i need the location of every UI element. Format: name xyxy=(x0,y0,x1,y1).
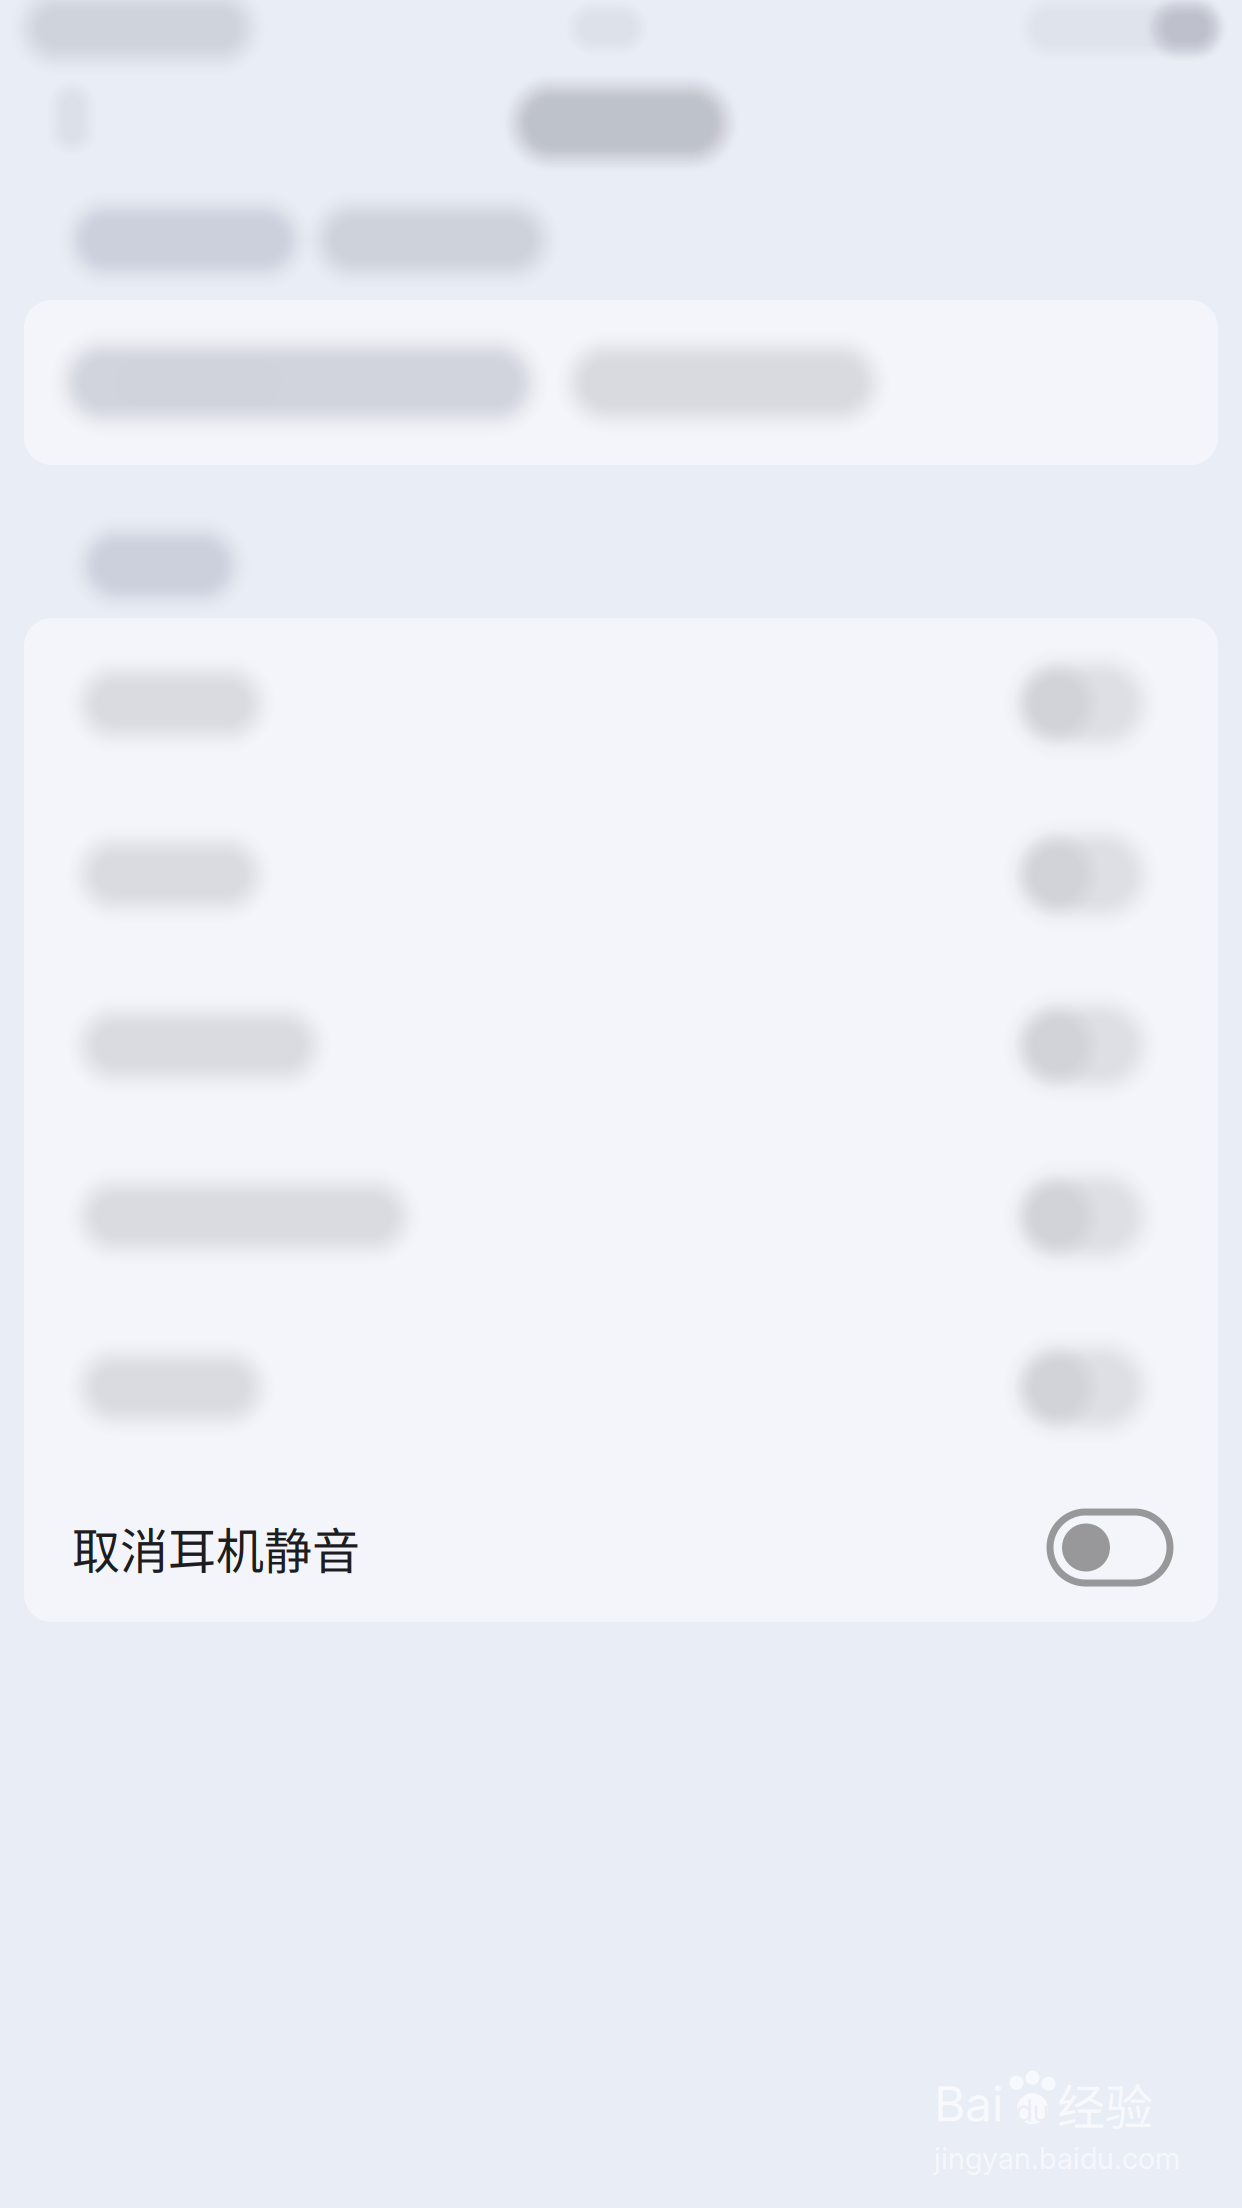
button[interactable] xyxy=(24,1302,1218,1473)
button[interactable] xyxy=(24,789,1218,960)
staticText: Bai xyxy=(934,2075,1004,2133)
staticText: 经验 xyxy=(1057,2069,1153,2138)
button[interactable] xyxy=(24,1131,1218,1302)
button[interactable]: 取消耳机静音 xyxy=(24,1473,1218,1622)
staticText: du xyxy=(1015,2093,1049,2128)
staticText: jingyan.baidu.com xyxy=(934,2140,1180,2176)
button[interactable] xyxy=(24,300,1218,465)
button[interactable] xyxy=(24,960,1218,1131)
staticText: 取消耳机静音 xyxy=(72,1513,360,1582)
button[interactable]: Back xyxy=(42,75,102,161)
button[interactable] xyxy=(24,618,1218,789)
